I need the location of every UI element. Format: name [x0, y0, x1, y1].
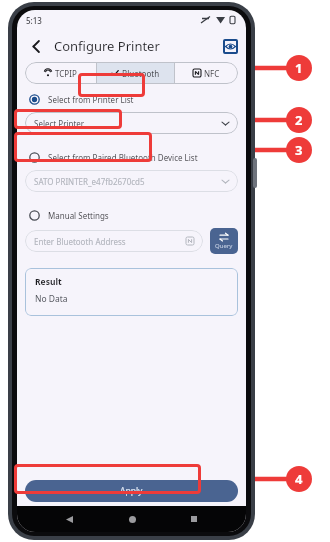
button[interactable]: Enter Bluetooth Address [25, 230, 203, 252]
button[interactable]: Manual Settings [25, 206, 238, 224]
button[interactable]: TCPIP [25, 62, 96, 84]
staticText: Select from Paired Bluetooth Device List [48, 152, 198, 163]
button[interactable]: Query [210, 228, 238, 254]
button[interactable]: Preview [223, 39, 238, 54]
staticText: Query [215, 242, 233, 250]
staticText: 3 [295, 141, 303, 159]
button[interactable]: SATO PRINTER_e47fb2670cd5 [25, 170, 238, 192]
staticText: No Data [35, 293, 68, 305]
staticText: Select Printer [34, 118, 85, 129]
button[interactable]: Apply [25, 480, 238, 502]
staticText: NFC [204, 68, 220, 79]
button[interactable]: NFC [175, 62, 238, 84]
button[interactable]: Select from Paired Bluetooth Device List [25, 148, 238, 166]
button[interactable]: Recents [183, 508, 205, 530]
button[interactable]: Back [25, 35, 47, 57]
staticText: Configure Printer [54, 37, 160, 55]
staticText: 5:13 [26, 15, 42, 26]
staticText: Result [35, 276, 62, 288]
staticText: Select from Printer List [48, 94, 134, 105]
button[interactable]: Back [58, 508, 80, 530]
staticText: Manual Settings [48, 210, 109, 221]
button[interactable]: Home [121, 508, 143, 530]
staticText: Bluetooth [122, 68, 160, 79]
staticText: 2 [295, 111, 303, 129]
staticText: Enter Bluetooth Address [34, 236, 126, 247]
button[interactable]: Select from Printer List [25, 90, 238, 108]
button[interactable]: Select Printer [25, 112, 238, 134]
staticText: Apply [120, 485, 143, 497]
staticText: 1 [295, 59, 303, 77]
staticText: SATO PRINTER_e47fb2670cd5 [34, 176, 145, 187]
staticText: 4 [295, 470, 303, 488]
button[interactable]: Bluetooth [97, 62, 174, 84]
staticText: TCPIP [55, 68, 77, 79]
